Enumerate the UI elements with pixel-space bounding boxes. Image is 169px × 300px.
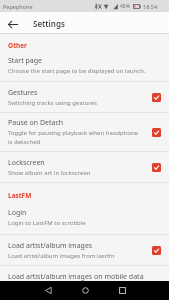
- staticText: Show album art in lockscreen: [8, 169, 91, 177]
- staticText: Choose the start page to be displayed on…: [8, 67, 146, 75]
- staticText: Switching tracks using gestures: [8, 99, 97, 107]
- staticText: is detached: [8, 138, 41, 146]
- staticText: Login to LastFM to scrobble: [8, 219, 86, 227]
- button[interactable]: Toggle Pause on Detach: [152, 128, 161, 137]
- staticText: Start page: [8, 56, 43, 66]
- button[interactable]: Pause on Detach: [0, 113, 169, 151]
- staticText: Gestures: [8, 88, 38, 98]
- button[interactable]: Load artist/album images on mobile data: [0, 266, 169, 281]
- button[interactable]: Gestures: [0, 82, 169, 112]
- staticText: Load artist/album images: [8, 241, 93, 251]
- staticText: Load artist/album images on mobile data: [8, 272, 144, 281]
- button[interactable]: Toggle Lockscreen: [152, 163, 161, 172]
- staticText: Pepephone: [3, 3, 33, 10]
- button[interactable]: Toggle Gestures: [152, 93, 161, 102]
- button[interactable]: Back: [3, 15, 22, 34]
- button[interactable]: Home: [70, 281, 100, 300]
- staticText: LastFM: [8, 191, 32, 200]
- staticText: Pause on Detach: [8, 118, 64, 128]
- staticText: Load artist/album images from lastfm: [8, 252, 115, 260]
- button[interactable]: Start page: [0, 50, 169, 81]
- button[interactable]: Lockscreen: [0, 152, 169, 182]
- staticText: Other: [8, 41, 27, 50]
- button[interactable]: Login: [0, 201, 169, 234]
- staticText: Lockscreen: [8, 158, 45, 168]
- button[interactable]: Recent apps: [107, 281, 137, 300]
- staticText: Login: [8, 208, 27, 218]
- staticText: 18:54: [143, 3, 158, 10]
- button[interactable]: Toggle Load artist/album images: [152, 246, 161, 255]
- staticText: 46%: [120, 3, 130, 10]
- staticText: Settings: [33, 18, 65, 29]
- button[interactable]: Back: [33, 281, 63, 300]
- button[interactable]: Load artist/album images: [0, 235, 169, 265]
- staticText: Toggle for pausing playback when headpho…: [8, 129, 139, 137]
